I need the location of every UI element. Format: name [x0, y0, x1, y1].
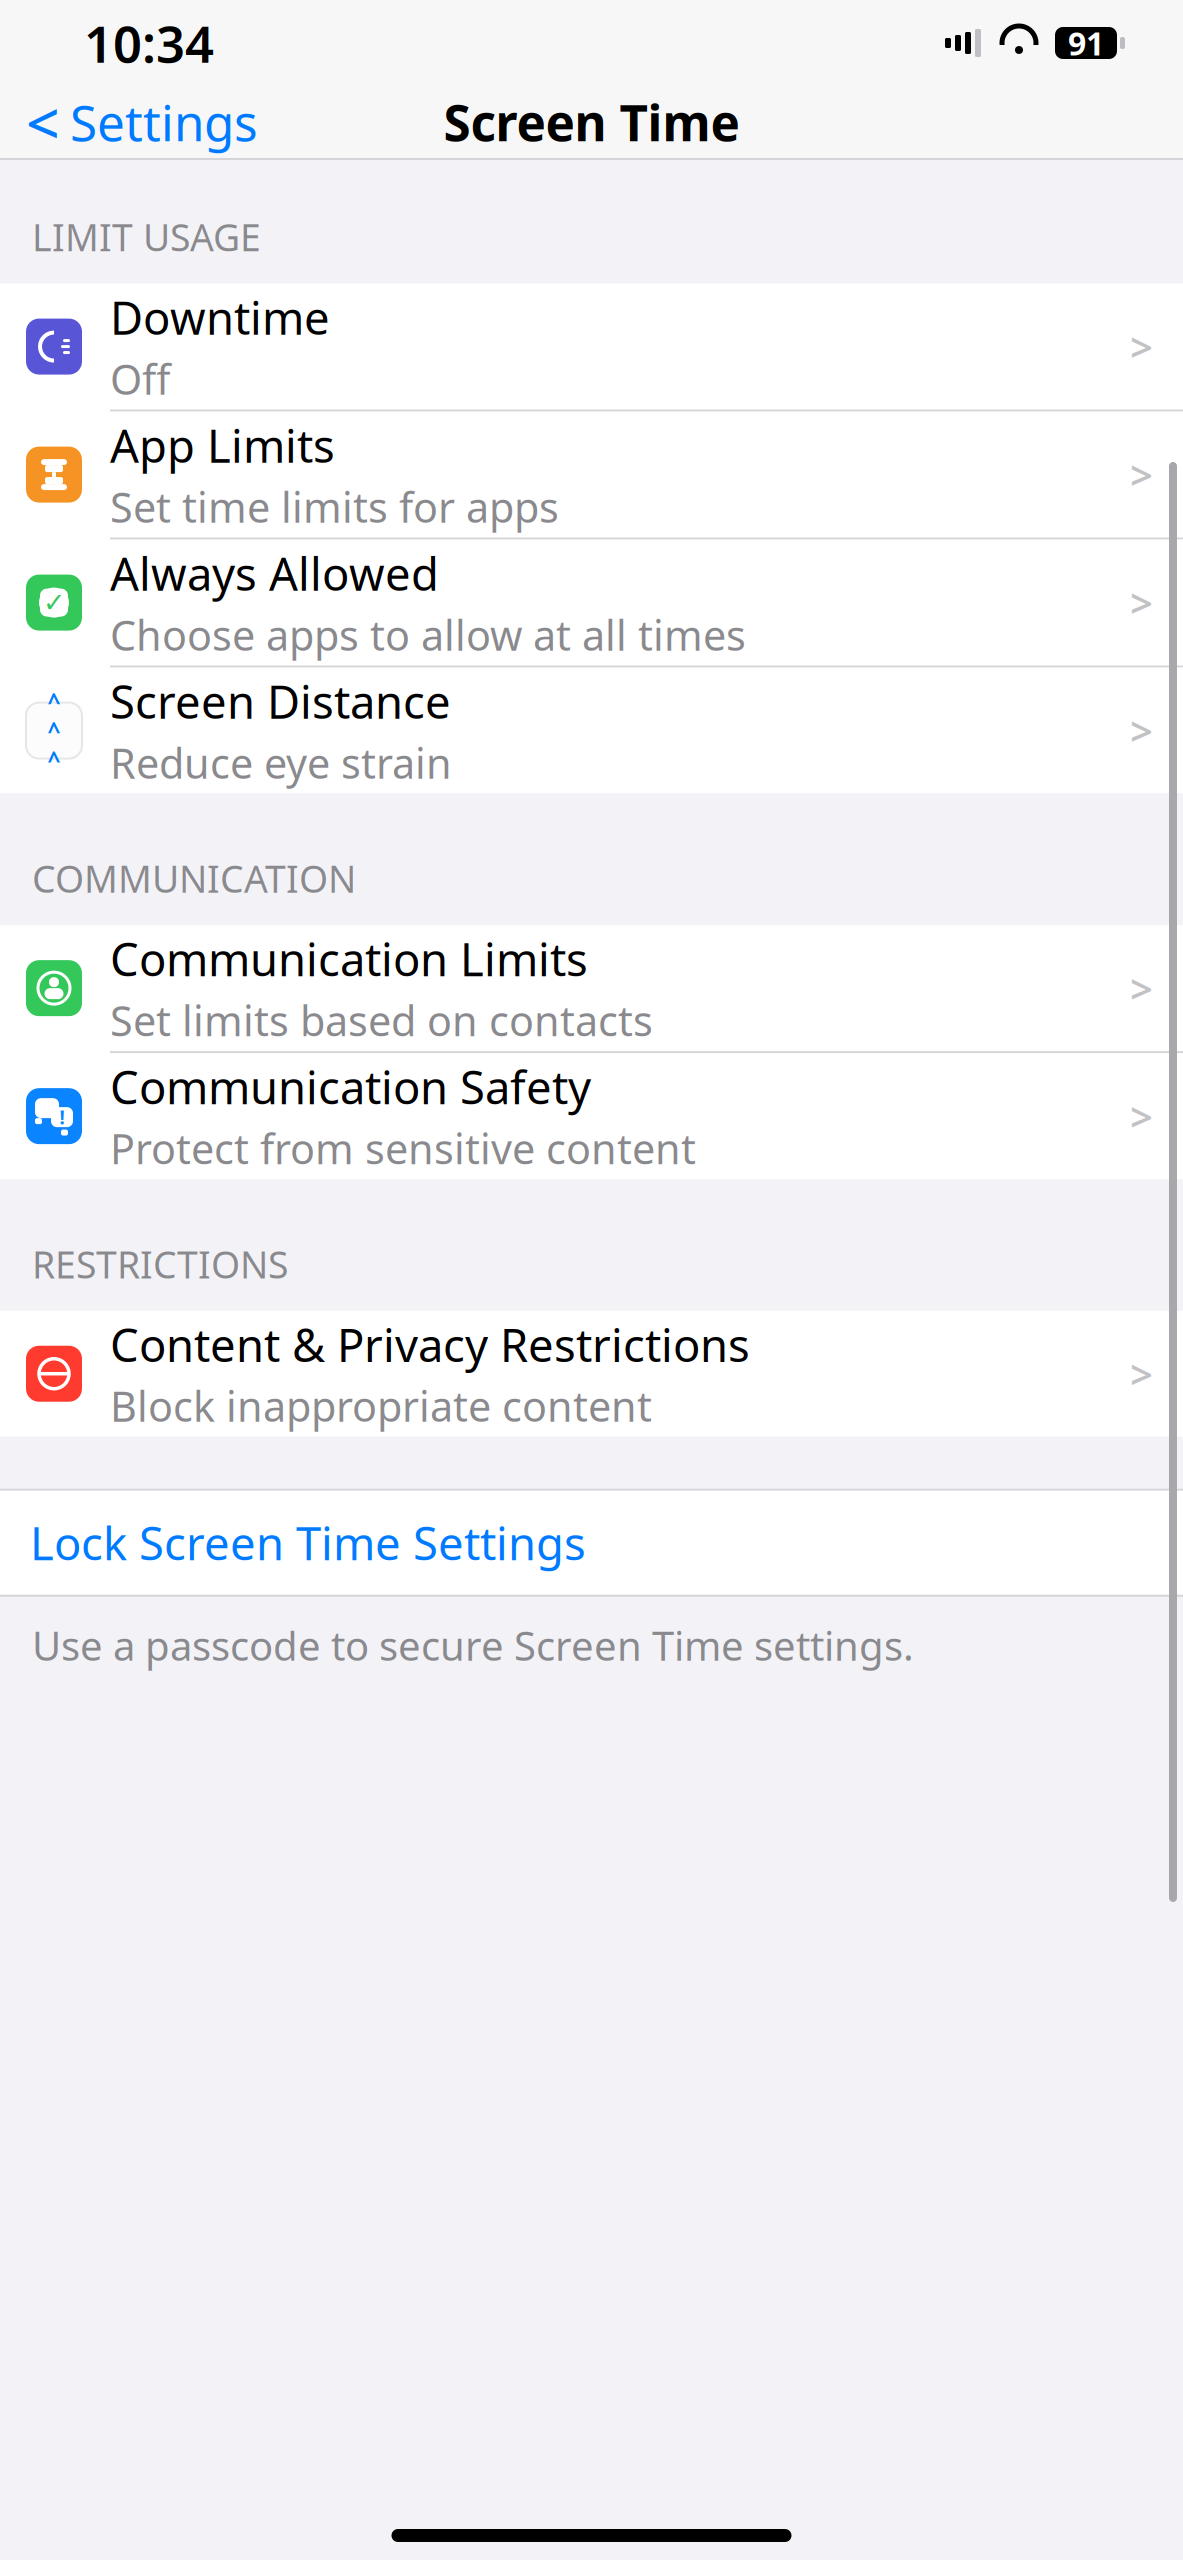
staticText: COMMUNICATION: [32, 854, 356, 903]
staticText: Lock Screen Time Settings: [30, 1513, 586, 1573]
staticText: Protect from sensitive content: [110, 1121, 696, 1176]
staticText: Block inappropriate content: [110, 1378, 652, 1433]
button[interactable]: ✓: [0, 540, 1183, 666]
staticText: Set time limits for apps: [110, 479, 559, 534]
staticText: >: [1130, 1347, 1153, 1400]
staticText: Reduce eye strain: [110, 735, 452, 790]
staticText: Off: [110, 351, 170, 406]
staticText: >: [1130, 576, 1153, 629]
staticText: Choose apps to allow at all times: [110, 607, 746, 662]
staticText: Communication Safety: [110, 1057, 591, 1117]
staticText: 91: [1068, 22, 1104, 64]
staticText: ^: [47, 745, 60, 775]
button[interactable]: ^: [0, 668, 1183, 794]
button[interactable]: !: [0, 1053, 1183, 1179]
staticText: !: [59, 1105, 64, 1130]
button[interactable]: App Limits: [0, 412, 1183, 538]
staticText: Settings: [70, 89, 258, 155]
staticText: >: [1130, 448, 1153, 501]
staticText: LIMIT USAGE: [32, 212, 261, 262]
staticText: Set limits based on contacts: [110, 993, 653, 1048]
staticText: >: [1130, 704, 1153, 757]
staticText: Use a passcode to secure Screen Time set…: [32, 1619, 914, 1672]
staticText: Downtime: [110, 287, 330, 347]
staticText: Communication Limits: [110, 929, 588, 989]
staticText: Screen Time: [443, 89, 739, 155]
button[interactable]: Content & Privacy Restrictions: [0, 1311, 1183, 1437]
staticText: >: [1130, 1090, 1153, 1143]
staticText: ^: [47, 686, 60, 716]
staticText: App Limits: [110, 415, 335, 475]
staticText: >: [1130, 962, 1153, 1015]
staticText: RESTRICTIONS: [32, 1239, 288, 1289]
button[interactable]: <: [0, 75, 258, 169]
button[interactable]: Downtime: [0, 284, 1183, 410]
button[interactable]: Lock Screen Time Settings: [0, 1491, 1183, 1595]
staticText: >: [1130, 320, 1153, 373]
staticText: ✓: [43, 587, 65, 618]
staticText: Screen Distance: [110, 671, 451, 731]
staticText: 10:34: [84, 9, 214, 77]
staticText: Content & Privacy Restrictions: [110, 1314, 750, 1374]
button[interactable]: Communication Limits: [0, 925, 1183, 1051]
staticText: Always Allowed: [110, 543, 439, 603]
staticText: <: [26, 83, 60, 161]
staticText: ^: [47, 715, 60, 746]
